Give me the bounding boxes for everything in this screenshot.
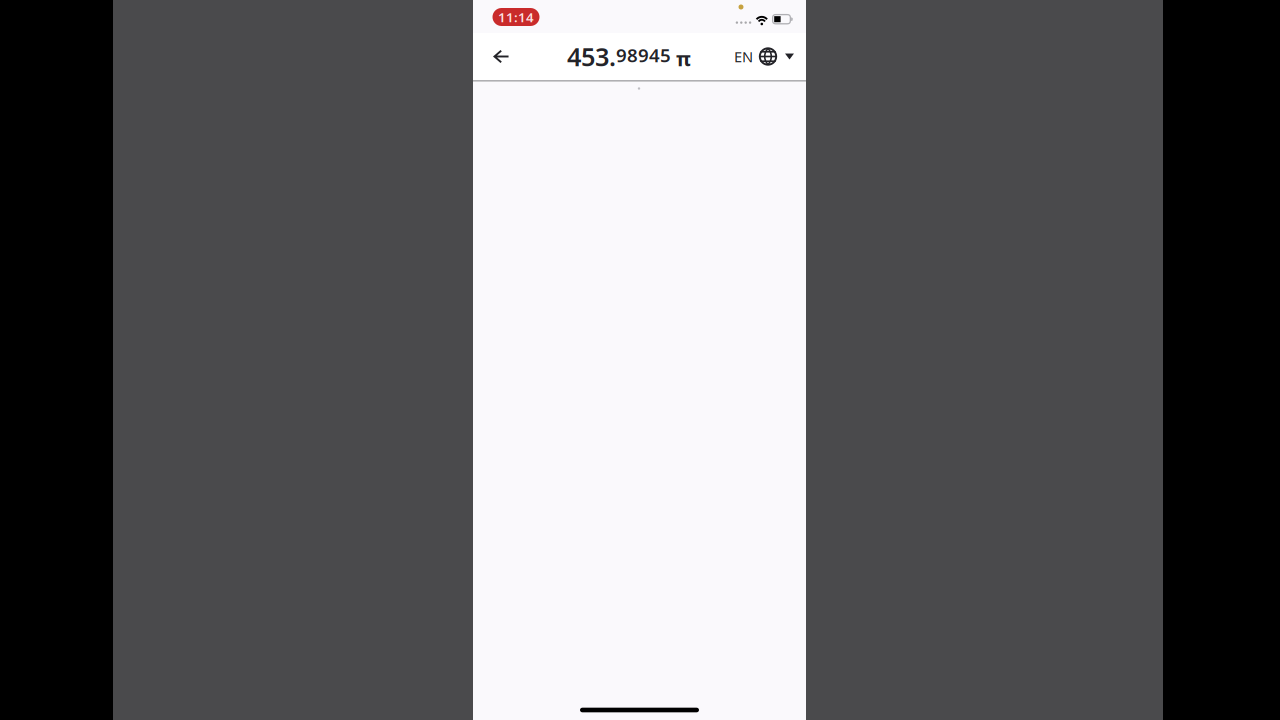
button[interactable]: Language: English [726, 34, 802, 79]
staticText: 11:14 [498, 8, 534, 26]
staticText: EN [734, 47, 753, 66]
button[interactable]: Back [479, 34, 523, 78]
staticText: 453.98945 π [567, 40, 691, 73]
